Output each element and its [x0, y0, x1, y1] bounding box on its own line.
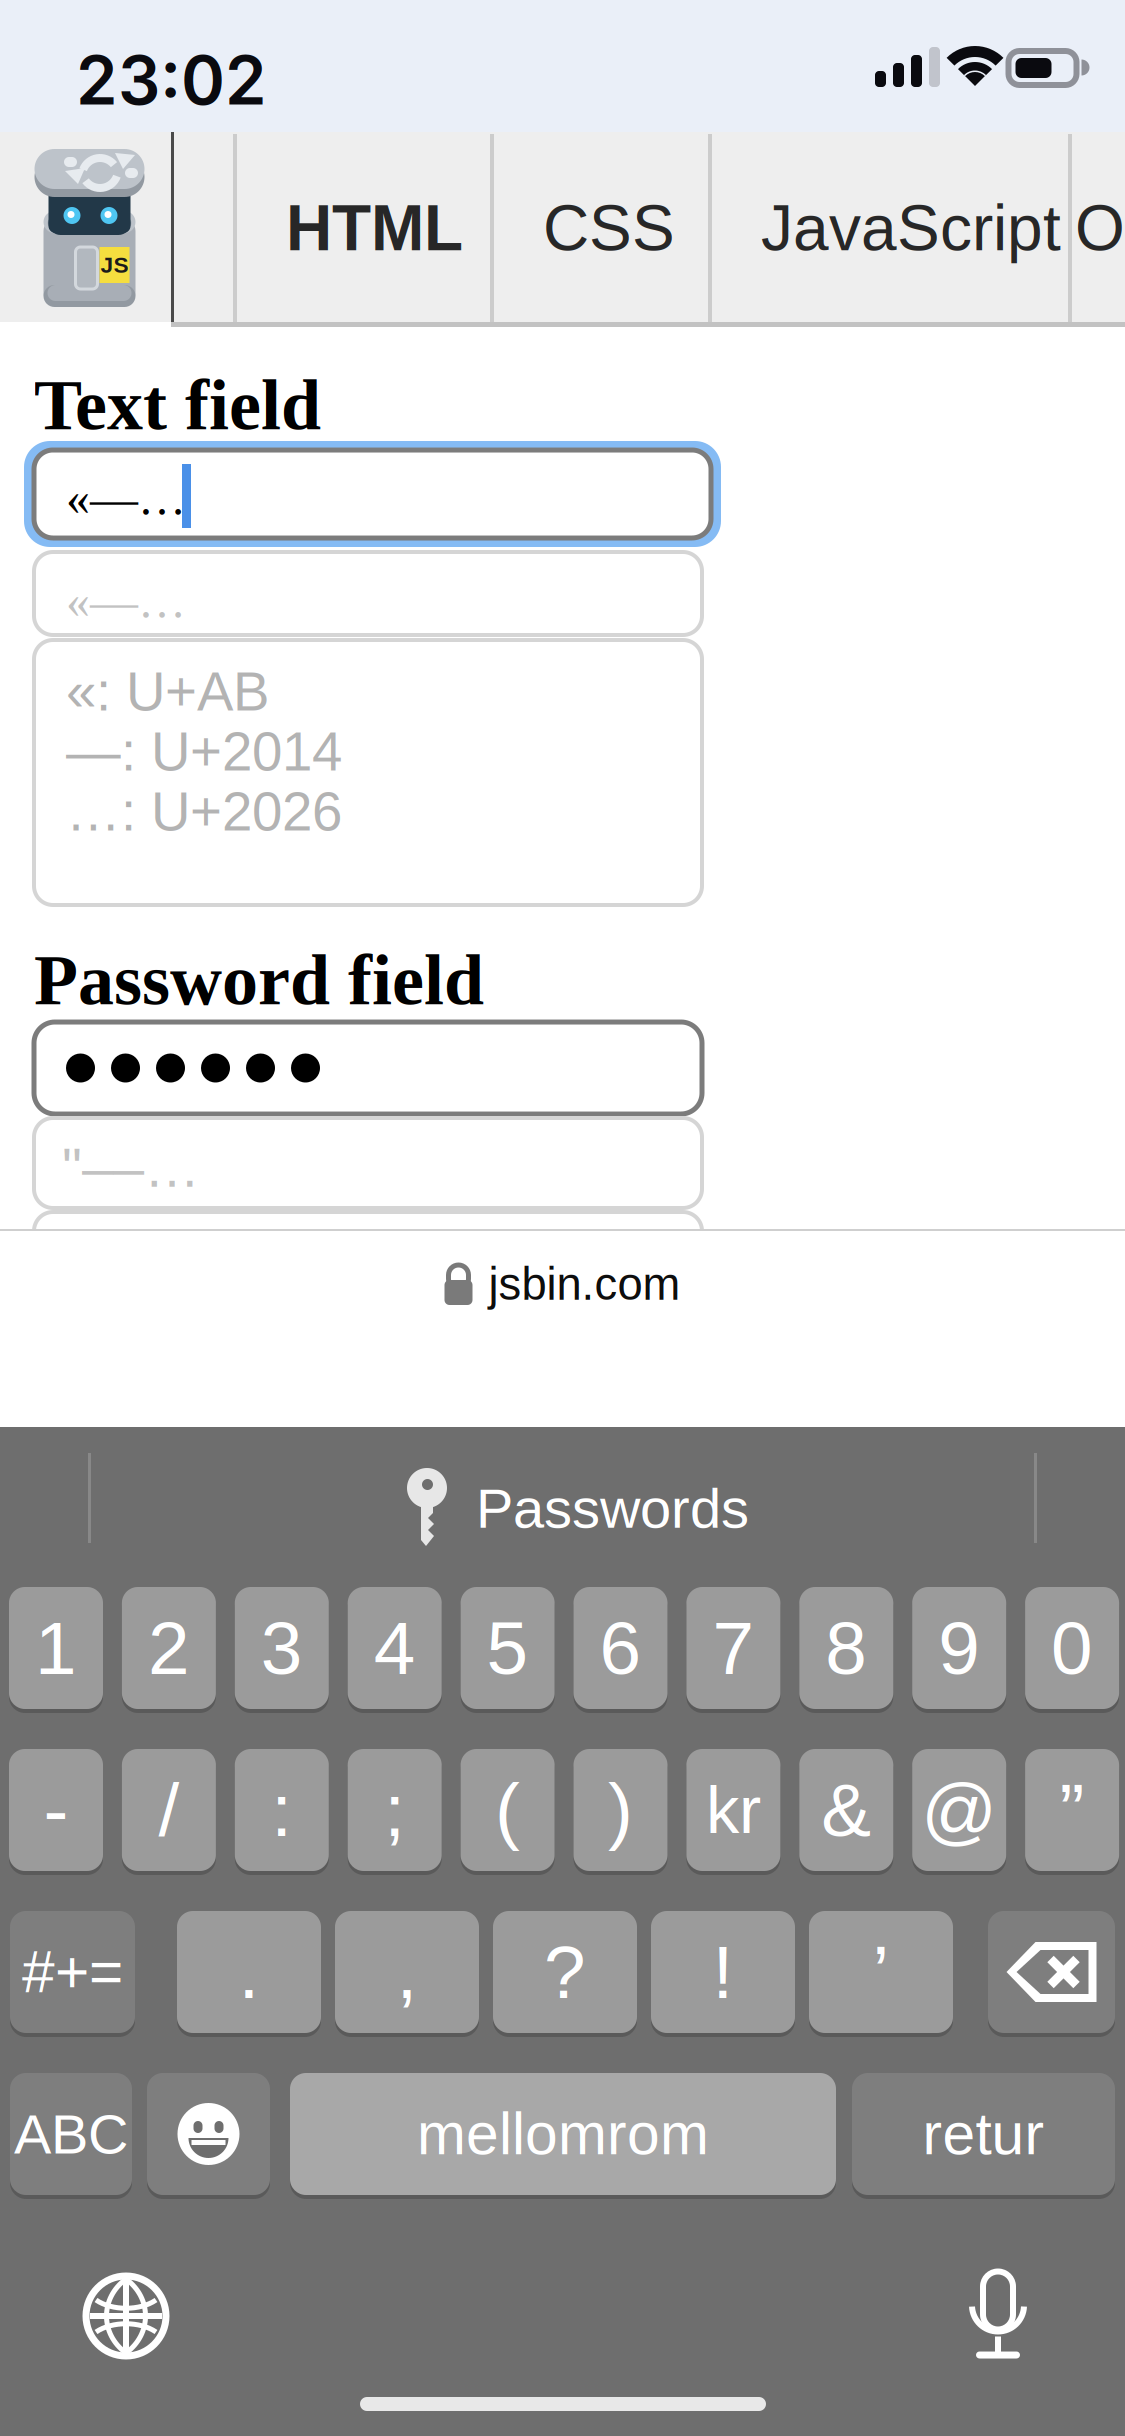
staticText: ” [1060, 1768, 1085, 1852]
button[interactable]: 4 [348, 1587, 442, 1713]
staticText: "––… [62, 1136, 200, 1199]
button[interactable]: , [335, 1911, 479, 2037]
button[interactable]: CSS [494, 134, 708, 322]
button[interactable]: mellomrom [290, 2073, 836, 2199]
staticText: ’ [872, 1930, 889, 2014]
button[interactable]: Delete [988, 1911, 1115, 2037]
button[interactable]: 8 [799, 1587, 893, 1713]
staticText: 1 [35, 1606, 77, 1690]
button[interactable]: #+= [10, 1911, 135, 2037]
staticText: retur [922, 2101, 1044, 2167]
staticText: «—… [66, 472, 186, 525]
staticText: / [158, 1768, 179, 1852]
button[interactable]: ABC [10, 2073, 132, 2199]
staticText: Passwords [476, 1477, 749, 1540]
staticText: …: U+2026 [66, 781, 342, 842]
button[interactable]: ’ [809, 1911, 953, 2037]
staticText: JavaScript [761, 192, 1061, 264]
staticText: 8 [825, 1606, 867, 1690]
button[interactable]: 6 [573, 1587, 667, 1713]
staticText: 5 [487, 1606, 529, 1690]
button[interactable]: . [177, 1911, 321, 2037]
button[interactable]: 0 [1025, 1587, 1119, 1713]
button[interactable]: JS Bin home [0, 132, 171, 322]
staticText: 6 [599, 1606, 641, 1690]
button[interactable]: ( [461, 1749, 555, 1875]
button[interactable]: Dictation [969, 2270, 1027, 2360]
staticText: jsbin.com [488, 1259, 680, 1309]
button[interactable]: & [799, 1749, 893, 1875]
button[interactable]: 2 [122, 1587, 216, 1713]
staticText: ; [384, 1768, 405, 1852]
staticText: 4 [374, 1606, 416, 1690]
staticText: 3 [261, 1606, 303, 1690]
staticText: «: U+AB [66, 661, 269, 722]
staticText: 2 [148, 1606, 190, 1690]
staticText: #+= [22, 1939, 123, 2005]
staticText: 0 [1051, 1606, 1093, 1690]
button[interactable]: 5 [461, 1587, 555, 1713]
button[interactable]: Next keyboard [86, 2276, 166, 2356]
staticText: ! [712, 1930, 733, 2014]
button[interactable]: O [1072, 134, 1125, 322]
button[interactable]: jsbin.com [0, 1231, 1125, 1337]
button[interactable]: ; [348, 1749, 442, 1875]
staticText: , [396, 1930, 417, 2014]
staticText: Password field [34, 940, 484, 1020]
staticText: Text field [34, 365, 321, 445]
button[interactable]: 7 [686, 1587, 780, 1713]
button[interactable]: ! [651, 1911, 795, 2037]
staticText: O [1075, 192, 1125, 264]
button[interactable]: retur [852, 2073, 1115, 2199]
staticText: —: U+2014 [66, 721, 342, 782]
button[interactable]: 1 [9, 1587, 103, 1713]
staticText: kr [706, 1773, 761, 1847]
staticText: JS [100, 252, 128, 278]
button[interactable]: : [235, 1749, 329, 1875]
button[interactable]: 3 [235, 1587, 329, 1713]
staticText: ? [544, 1930, 586, 2014]
staticText: HTML [286, 192, 463, 264]
staticText: 23:02 [76, 40, 267, 121]
staticText: CSS [543, 192, 675, 264]
button[interactable]: 9 [912, 1587, 1006, 1713]
staticText: . [238, 1930, 259, 2014]
staticText: ABC [14, 2103, 128, 2165]
staticText: : [271, 1768, 292, 1852]
button[interactable]: kr [686, 1749, 780, 1875]
button[interactable]: HTML [237, 134, 490, 322]
button[interactable]: Emoji [147, 2073, 270, 2199]
button[interactable]: @ [912, 1749, 1006, 1875]
staticText: 7 [712, 1606, 754, 1690]
button[interactable]: ” [1025, 1749, 1119, 1875]
button[interactable]: ) [573, 1749, 667, 1875]
staticText: mellomrom [417, 2101, 709, 2167]
staticText: - [43, 1768, 68, 1852]
staticText: ) [608, 1768, 633, 1852]
button[interactable]: ? [493, 1911, 637, 2037]
staticText: 9 [938, 1606, 980, 1690]
staticText: & [821, 1768, 871, 1852]
button[interactable]: - [9, 1749, 103, 1875]
button[interactable]: / [122, 1749, 216, 1875]
staticText: ( [495, 1768, 520, 1852]
staticText: @ [921, 1768, 997, 1852]
staticText: «—… [66, 575, 186, 628]
button[interactable]: JavaScript [712, 134, 1068, 322]
